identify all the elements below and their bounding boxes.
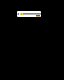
button[interactable] [17, 11, 41, 17]
